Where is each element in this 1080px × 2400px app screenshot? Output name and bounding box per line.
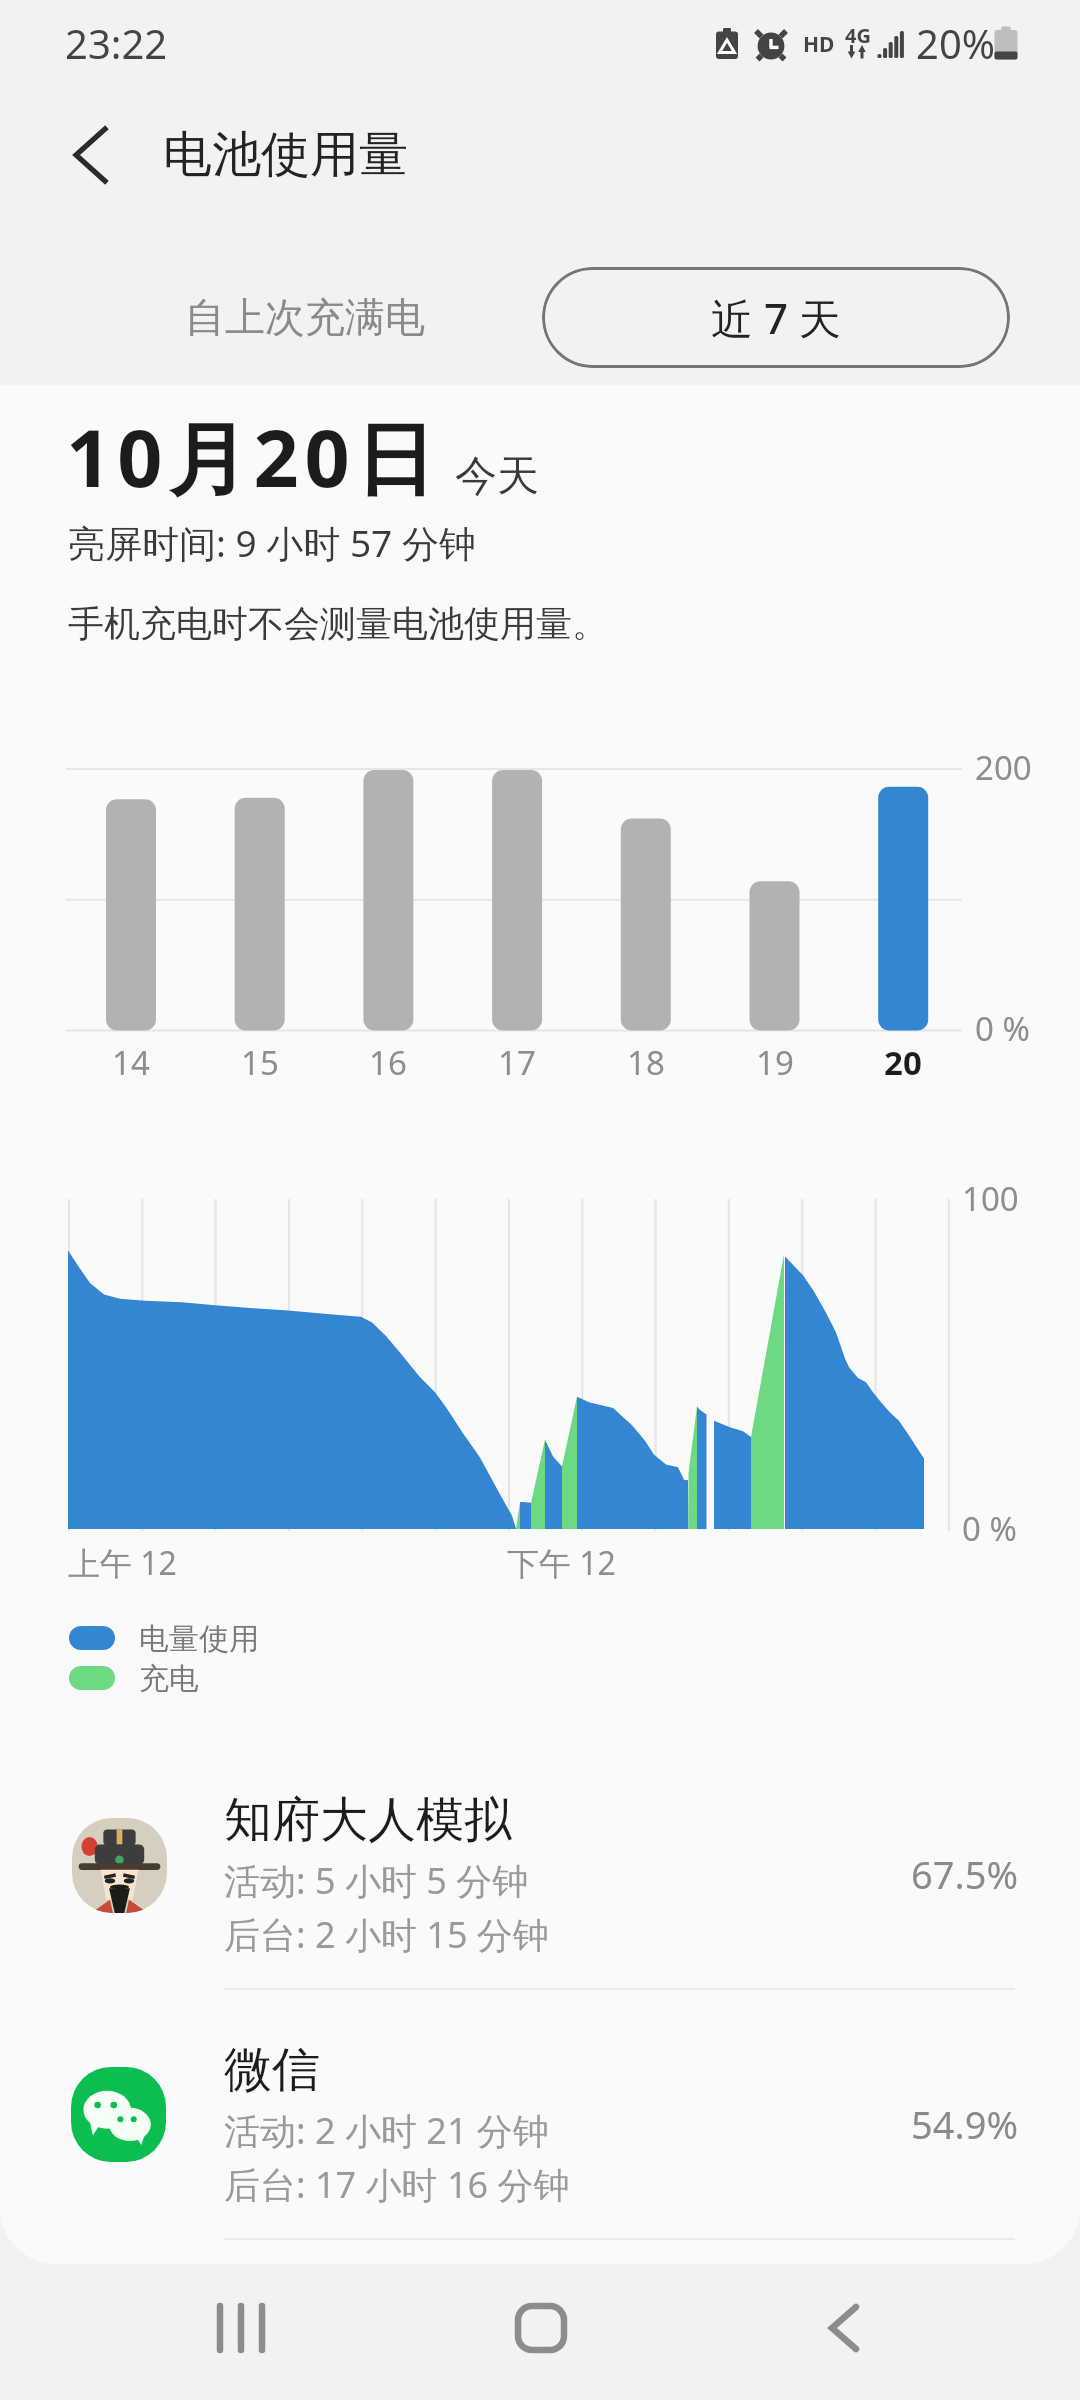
staticText: 后台: 2 小时 15 分钟 (224, 1910, 549, 1959)
staticText: 手机充电时不会测量电池使用量。 (68, 601, 608, 646)
staticText: 微信 (224, 2040, 320, 2100)
staticText: 4G (845, 22, 871, 49)
button[interactable]: 自上次充满电 (120, 272, 490, 362)
staticText: 14 (112, 1040, 150, 1085)
staticText: 电量使用 (139, 1620, 259, 1658)
staticText: 电池使用量 (163, 124, 408, 186)
staticText: 17 (498, 1040, 536, 1085)
staticText: 16 (369, 1040, 407, 1085)
staticText: 20% (916, 16, 995, 70)
button[interactable]: Home (471, 2258, 611, 2398)
staticText: 下午 12 (507, 1541, 616, 1585)
staticText: HD (803, 30, 835, 59)
staticText: 后台: 17 小时 16 分钟 (224, 2160, 570, 2209)
staticText: 54.9% (911, 2098, 1018, 2150)
staticText: 67.5% (911, 1848, 1018, 1900)
staticText: 0 % (962, 1506, 1017, 1551)
staticText: 19 (756, 1040, 794, 1085)
staticText: 23:22 (65, 16, 168, 70)
button[interactable]: Back (774, 2258, 914, 2398)
staticText: 10月20日 (66, 403, 441, 511)
staticText: 0 % (975, 1006, 1030, 1051)
staticText: 18 (627, 1040, 665, 1085)
staticText: 200 (975, 745, 1032, 790)
button[interactable]: 微信 (0, 2010, 1080, 2250)
staticText: 充电 (139, 1660, 199, 1698)
staticText: 20 (884, 1040, 922, 1085)
staticText: 100 (962, 1176, 1019, 1221)
button[interactable]: Back (50, 112, 136, 198)
staticText: 近 7 天 (711, 289, 841, 346)
staticText: 上午 12 (68, 1541, 177, 1585)
button[interactable]: Recents (171, 2258, 311, 2398)
staticText: 活动: 2 小时 21 分钟 (224, 2106, 549, 2155)
button[interactable]: 近 7 天 (542, 267, 1010, 368)
staticText: 自上次充满电 (185, 292, 425, 342)
staticText: 知府大人模拟 (224, 1790, 512, 1850)
staticText: 活动: 5 小时 5 分钟 (224, 1856, 529, 1905)
staticText: 15 (241, 1040, 279, 1085)
staticText: 亮屏时间: 9 小时 57 分钟 (68, 517, 476, 568)
button[interactable]: 知府大人模拟 (0, 1760, 1080, 2000)
staticText: 今天 (455, 450, 539, 503)
